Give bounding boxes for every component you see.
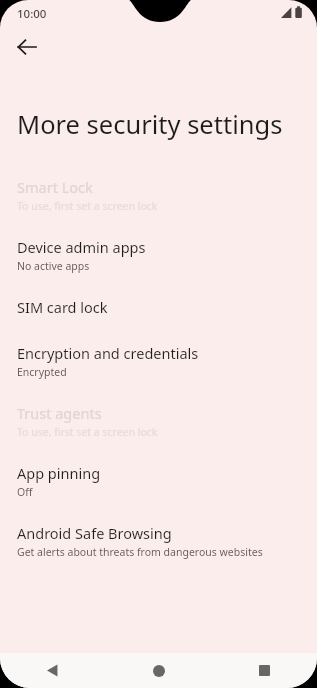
- button[interactable]: Back: [8, 28, 46, 66]
- staticText: Trust agents: [17, 403, 102, 423]
- button[interactable]: Encryption and credentials: [0, 337, 317, 383]
- staticText: SIM card lock: [17, 297, 108, 317]
- staticText: Get alerts about threats from dangerous …: [17, 545, 263, 559]
- staticText: 10:00: [17, 6, 47, 22]
- staticText: App pinning: [17, 463, 101, 483]
- staticText: Android Safe Browsing: [17, 523, 172, 543]
- button: Trust agents: [0, 397, 317, 443]
- staticText: No active apps: [17, 259, 90, 273]
- staticText: Encryption and credentials: [17, 343, 199, 363]
- staticText: Off: [17, 485, 33, 499]
- button[interactable]: Recent apps: [212, 653, 317, 688]
- button[interactable]: Home: [105, 653, 212, 688]
- button[interactable]: App pinning: [0, 457, 317, 503]
- staticText: Encrypted: [17, 365, 67, 379]
- button[interactable]: SIM card lock: [0, 291, 317, 331]
- staticText: To use, first set a screen lock: [17, 199, 158, 213]
- staticText: To use, first set a screen lock: [17, 425, 158, 439]
- staticText: Smart Lock: [17, 177, 93, 197]
- staticText: Device admin apps: [17, 237, 146, 257]
- button[interactable]: Back: [0, 653, 105, 688]
- staticText: More security settings: [17, 107, 283, 142]
- button: Smart Lock: [0, 171, 317, 217]
- button[interactable]: Device admin apps: [0, 231, 317, 277]
- button[interactable]: Android Safe Browsing: [0, 517, 317, 563]
